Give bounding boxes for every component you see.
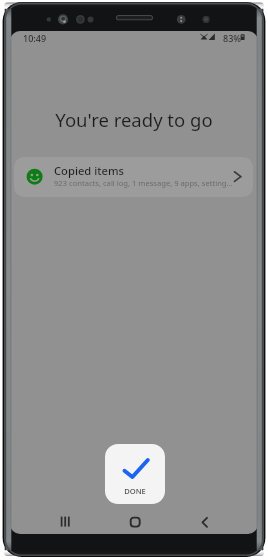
- button[interactable]: Done: [105, 444, 165, 504]
- staticText: DONE: [105, 486, 165, 498]
- button[interactable]: Copied items: [14, 157, 253, 197]
- staticText: 10:49: [23, 32, 47, 44]
- staticText: You're ready to go: [10, 107, 258, 133]
- button[interactable]: Recent apps: [44, 506, 86, 534]
- staticText: 923 contacts, call log, 1 message, 9 app…: [54, 178, 233, 188]
- staticText: 83%: [223, 32, 241, 44]
- button[interactable]: Home: [114, 506, 156, 534]
- button[interactable]: Back: [184, 506, 226, 534]
- staticText: Copied items: [54, 163, 124, 178]
